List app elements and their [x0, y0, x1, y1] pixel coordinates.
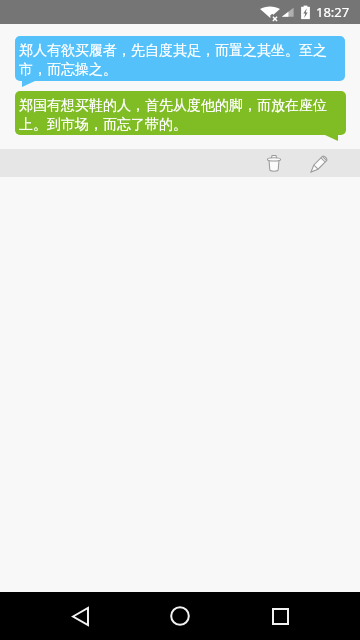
button[interactable]: Recents	[250, 592, 310, 640]
staticText: 18:27	[316, 3, 350, 21]
button[interactable]: 郑人有欲买履者，先自度其足，而置之其坐。至之市，而忘操之。	[15, 36, 345, 81]
button[interactable]: Delete	[251, 149, 297, 177]
staticText: 郑人有欲买履者，先自度其足，而置之其坐。至之市，而忘操之。	[19, 42, 340, 78]
button[interactable]: Back	[50, 592, 110, 640]
staticText: 郑国有想买鞋的人，首先从度他的脚，而放在座位上。到市场，而忘了带的。	[19, 97, 341, 133]
button[interactable]: Edit	[297, 149, 343, 177]
button[interactable]: Home	[150, 592, 210, 640]
button[interactable]: 郑国有想买鞋的人，首先从度他的脚，而放在座位上。到市场，而忘了带的。	[15, 91, 346, 135]
